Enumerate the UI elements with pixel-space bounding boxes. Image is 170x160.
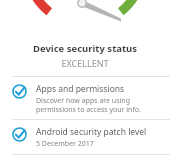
button[interactable]: Secure	[0, 120, 170, 154]
staticText: Discover how apps are using permissions …	[36, 96, 160, 114]
other: Secure	[12, 127, 27, 142]
staticText: Device security status	[0, 42, 170, 55]
staticText: Android security patch level	[36, 126, 147, 138]
button[interactable]: Secure	[0, 77, 170, 119]
other: Secure	[12, 84, 27, 99]
staticText: EXCELLENT	[0, 57, 170, 69]
staticText: Apps and permissions	[36, 83, 125, 95]
staticText: 5 December 2017	[36, 139, 94, 149]
